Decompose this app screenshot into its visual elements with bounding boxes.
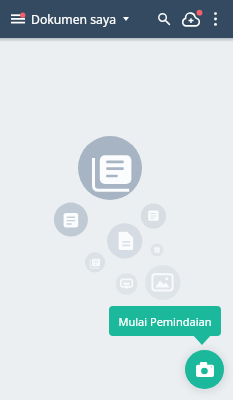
button[interactable]: Menu [6,0,30,38]
staticText: Dokumen saya [31,11,117,28]
button[interactable]: Mulai Pemindaian [109,306,221,336]
button[interactable]: Search [151,0,177,38]
button[interactable]: Start scanning [185,350,224,389]
staticText: Mulai Pemindaian [118,314,212,329]
button[interactable]: More options [205,0,225,38]
button[interactable]: Upload to cloud [177,0,205,38]
